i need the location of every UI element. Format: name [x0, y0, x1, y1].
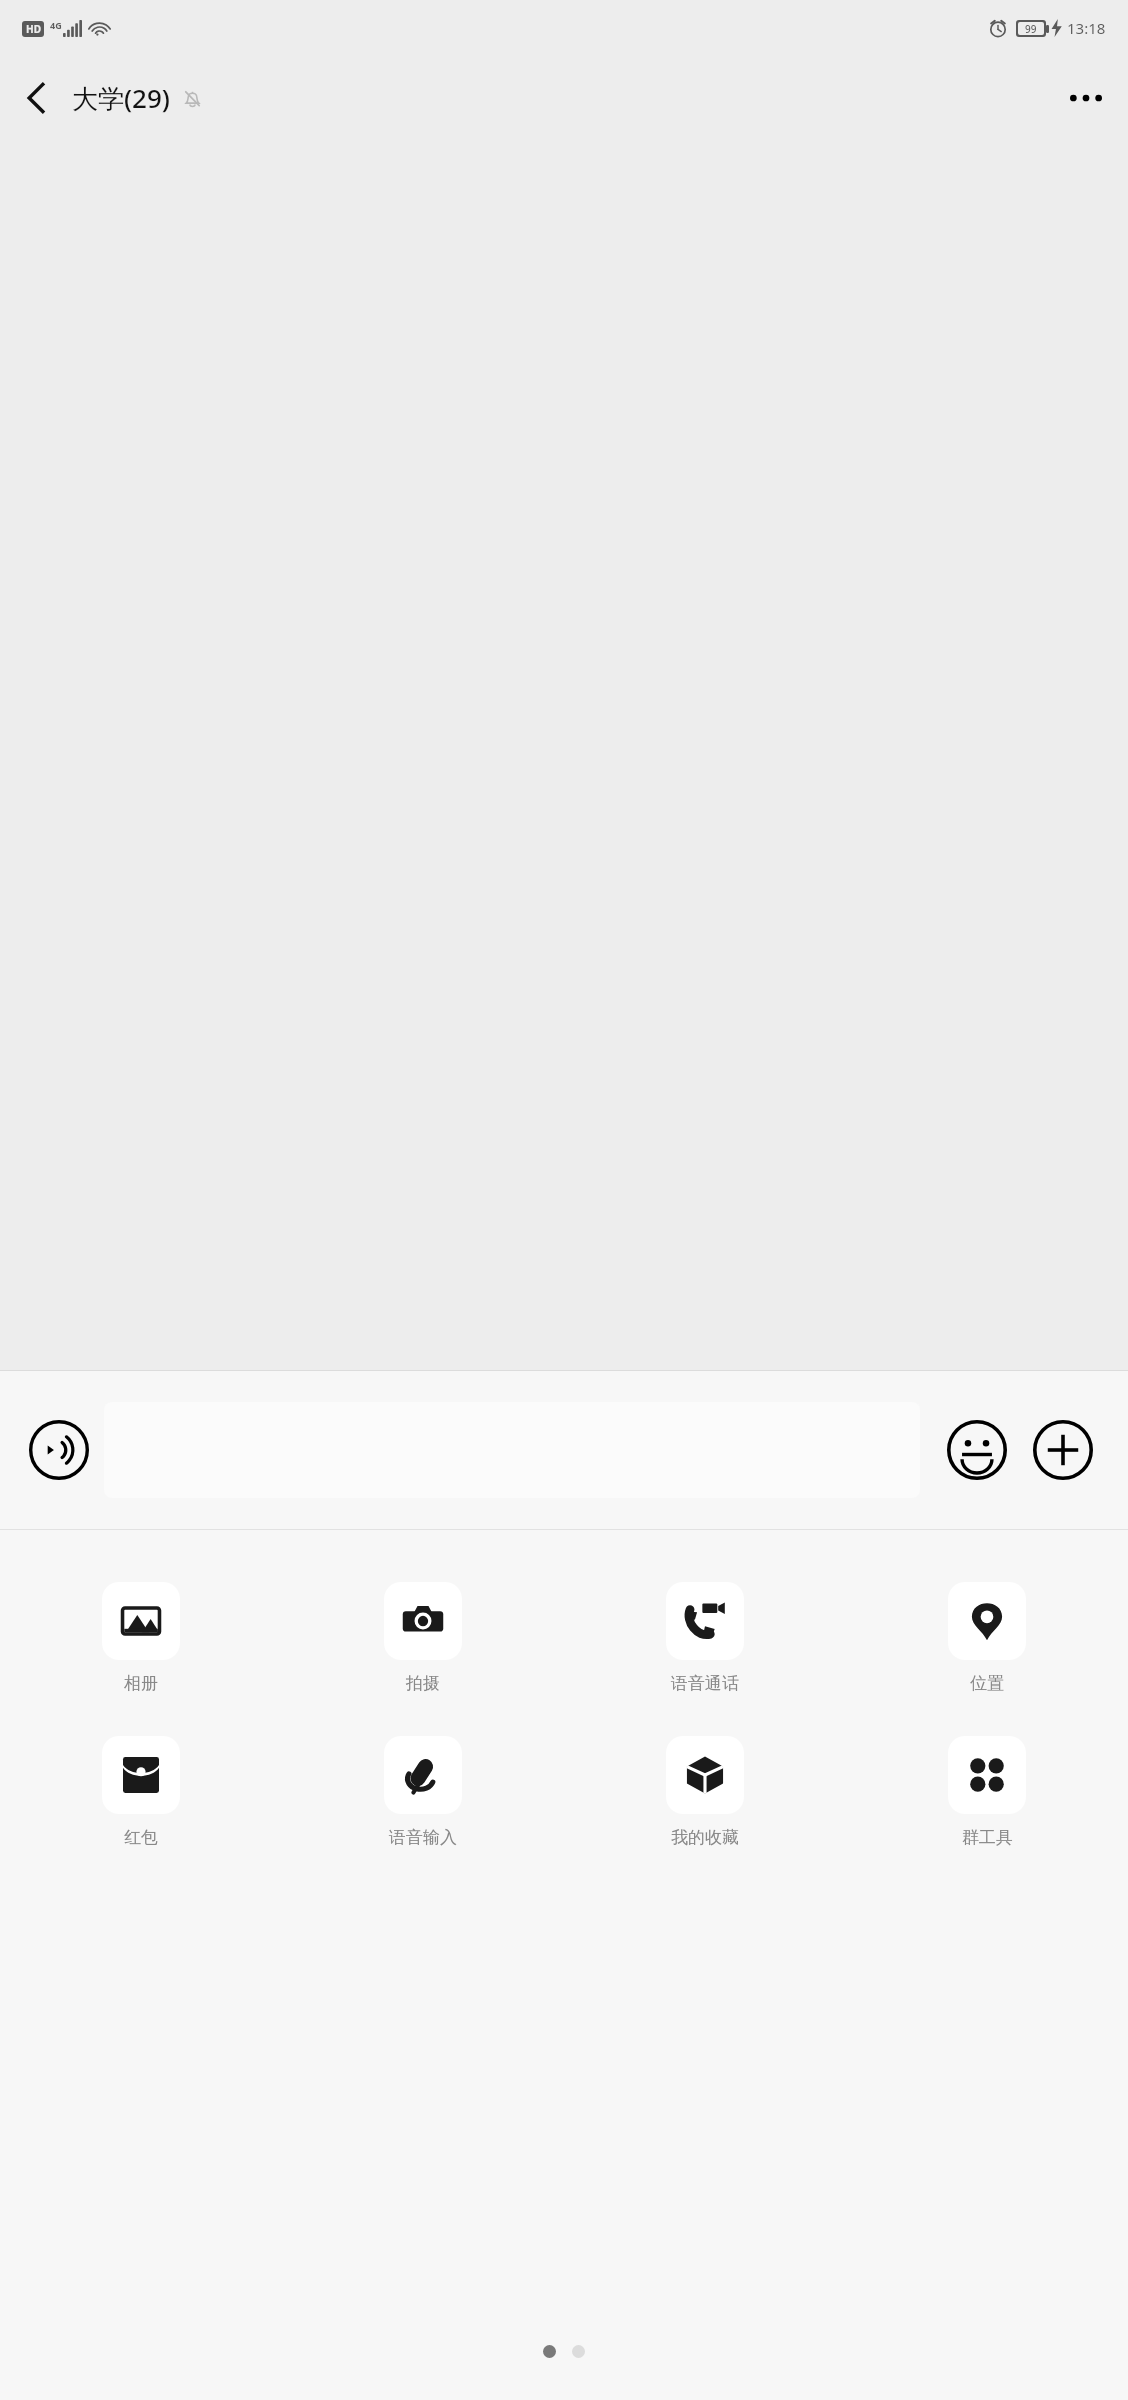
staticText: 位置: [970, 1673, 1004, 1694]
button[interactable]: Back: [8, 70, 64, 126]
button[interactable]: 拍摄: [282, 1582, 564, 1694]
staticText: 群工具: [962, 1827, 1013, 1848]
button[interactable]: More functions: [1020, 1407, 1106, 1493]
staticText: 语音输入: [389, 1827, 457, 1848]
staticText: 4G: [50, 19, 62, 31]
button[interactable]: Voice message: [16, 1407, 102, 1493]
button[interactable]: Emoji: [934, 1407, 1020, 1493]
button[interactable]: 位置: [846, 1582, 1128, 1694]
button[interactable]: 语音通话: [564, 1582, 846, 1694]
staticText: 红包: [124, 1827, 158, 1848]
button[interactable]: 相册: [0, 1582, 282, 1694]
staticText: 我的收藏: [671, 1827, 739, 1848]
staticText: 语音通话: [671, 1673, 739, 1694]
button[interactable]: 红包: [0, 1736, 282, 1848]
staticText: 大学(29): [72, 80, 170, 116]
button[interactable]: 群工具: [846, 1736, 1128, 1848]
staticText: 相册: [124, 1673, 158, 1694]
staticText: 拍摄: [406, 1673, 440, 1694]
staticText: HD: [26, 22, 41, 36]
staticText: 13:18: [1067, 18, 1106, 38]
button[interactable]: 语音输入: [282, 1736, 564, 1848]
staticText: 99: [1025, 22, 1037, 35]
button[interactable]: 我的收藏: [564, 1736, 846, 1848]
button[interactable]: More options: [1058, 70, 1114, 126]
